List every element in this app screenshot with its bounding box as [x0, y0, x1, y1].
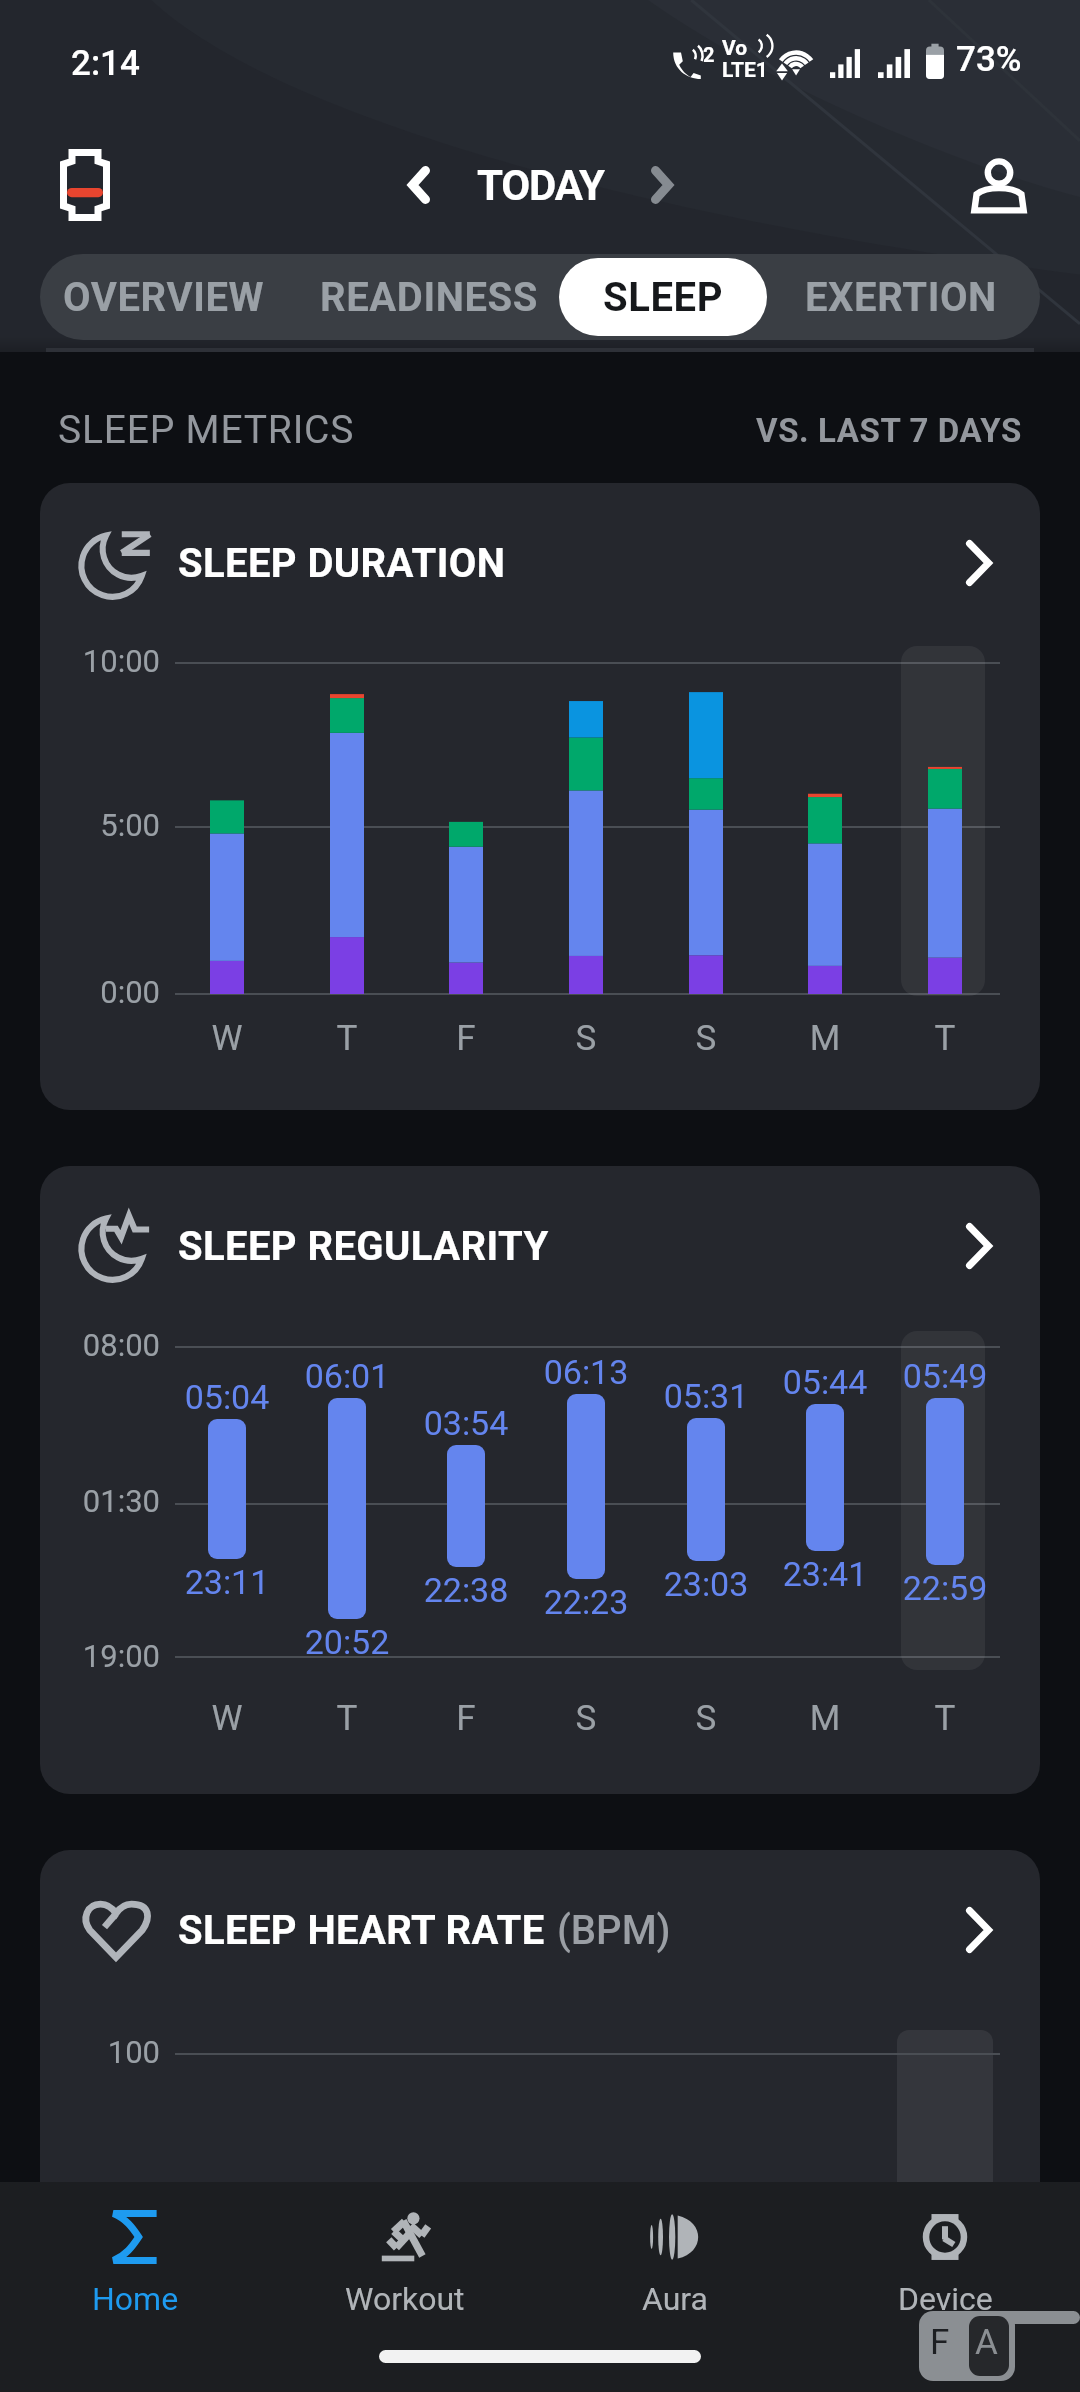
- button[interactable]: Next day: [604, 144, 720, 226]
- staticText: 23:41: [755, 1554, 895, 1594]
- staticText: T: [915, 1698, 975, 1739]
- staticText: SLEEP HEART RATE: [178, 1907, 545, 1954]
- staticText: 0:00: [40, 974, 160, 1010]
- staticText: 23:03: [636, 1564, 776, 1604]
- button[interactable]: Device: [810, 2182, 1080, 2322]
- staticText: S: [676, 1018, 736, 1059]
- staticText: A: [975, 2322, 998, 2363]
- button[interactable]: SLEEP HEART RATE: [40, 1850, 1040, 2270]
- staticText: 08:00: [40, 1327, 160, 1363]
- staticText: T: [317, 1698, 377, 1739]
- staticText: 01:30: [40, 1483, 160, 1519]
- staticText: M: [795, 1018, 855, 1059]
- staticText: SLEEP REGULARITY: [178, 1223, 549, 1270]
- staticText: 100: [40, 2034, 160, 2070]
- button[interactable]: OVERVIEW: [40, 258, 287, 336]
- staticText: T: [317, 1018, 377, 1059]
- staticText: 05:31: [636, 1376, 776, 1416]
- staticText: 2: [703, 43, 715, 66]
- staticText: SLEEP METRICS: [58, 407, 355, 453]
- button[interactable]: Previous day: [361, 144, 477, 226]
- staticText: 03:54: [396, 1403, 536, 1443]
- staticText: (BPM): [557, 1907, 671, 1954]
- staticText: W: [197, 1018, 257, 1059]
- staticText: SLEEP: [603, 274, 724, 321]
- button[interactable]: READINESS: [298, 258, 561, 336]
- staticText: EXERTION: [805, 274, 997, 321]
- staticText: OVERVIEW: [63, 274, 265, 321]
- staticText: 22:59: [875, 1568, 1015, 1608]
- button[interactable]: Home: [0, 2182, 270, 2322]
- staticText: Device: [898, 2280, 993, 2318]
- staticText: SLEEP DURATION: [178, 540, 506, 587]
- staticText: 05:44: [755, 1362, 895, 1402]
- staticText: 06:01: [277, 1356, 417, 1396]
- staticText: 2:14: [71, 43, 140, 84]
- staticText: Vo: [722, 36, 748, 61]
- staticText: T: [915, 1018, 975, 1059]
- staticText: LTE1: [722, 58, 768, 83]
- button[interactable]: SLEEP: [559, 258, 767, 336]
- staticText: F: [930, 2322, 950, 2363]
- button[interactable]: SLEEP REGULARITY: [40, 1166, 1040, 1794]
- staticText: READINESS: [320, 274, 539, 321]
- button[interactable]: Watch battery: [60, 149, 110, 221]
- button[interactable]: Aura: [540, 2182, 810, 2322]
- staticText: 5:00: [40, 807, 160, 843]
- button[interactable]: SLEEP DURATION: [40, 483, 1040, 1110]
- staticText: VS. LAST 7 DAYS: [756, 411, 1022, 450]
- staticText: 20:52: [277, 1622, 417, 1662]
- staticText: 22:23: [516, 1582, 656, 1622]
- button[interactable]: Workout: [270, 2182, 540, 2322]
- staticText: F: [436, 1018, 496, 1059]
- staticText: Home: [92, 2280, 179, 2318]
- button[interactable]: EXERTION: [774, 258, 1027, 336]
- staticText: Aura: [642, 2280, 708, 2318]
- staticText: 06:13: [516, 1352, 656, 1392]
- staticText: TODAY: [477, 161, 604, 210]
- staticText: 10:00: [40, 643, 160, 679]
- staticText: Workout: [345, 2280, 465, 2318]
- staticText: S: [556, 1018, 616, 1059]
- staticText: S: [556, 1698, 616, 1739]
- staticText: 22:38: [396, 1570, 536, 1610]
- button[interactable]: Profile: [964, 150, 1034, 220]
- staticText: 05:49: [875, 1356, 1015, 1396]
- staticText: 23:11: [157, 1562, 297, 1602]
- staticText: M: [795, 1698, 855, 1739]
- staticText: 73%: [956, 39, 1022, 80]
- staticText: W: [197, 1698, 257, 1739]
- staticText: F: [436, 1698, 496, 1739]
- staticText: 19:00: [40, 1638, 160, 1674]
- staticText: S: [676, 1698, 736, 1739]
- staticText: 05:04: [157, 1377, 297, 1417]
